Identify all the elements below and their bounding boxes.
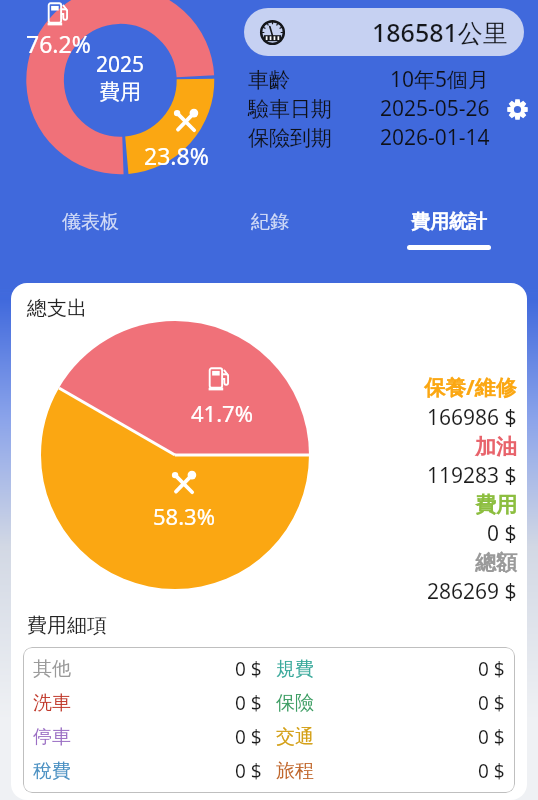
staticText: 2025 [96,50,145,79]
staticText: 保險 [276,691,362,715]
staticText: 0 $ [235,758,262,784]
staticText: 2026-01-14 [380,123,490,152]
staticText: 76.2% [26,28,91,59]
button[interactable]: 紀錄 [180,200,359,258]
staticText: 0 $ [478,724,505,750]
staticText: 總額 [475,550,517,576]
button[interactable]: 稅費 [23,754,515,788]
staticText: 停車 [33,725,119,749]
staticText: 58.3% [153,501,215,531]
button[interactable]: 洗車 [23,686,515,720]
staticText: 紀錄 [251,210,289,234]
staticText: 0 $ [235,690,262,716]
staticText: 儀表板 [62,210,119,234]
button[interactable]: 費用統計 [359,200,538,258]
button[interactable]: Settings [496,88,538,130]
staticText: 保險到期 [248,125,332,151]
staticText: 保養/維修 [424,373,517,402]
staticText: 0 $ [235,656,262,682]
staticText: 23.8% [144,140,209,171]
staticText: 0 $ [478,758,505,784]
button[interactable]: 其他 [23,652,515,686]
button[interactable]: 停車 [23,720,515,754]
staticText: 166986 $ [427,403,517,432]
staticText: 10年5個月 [390,65,490,94]
staticText: 2025-05-26 [380,94,490,123]
staticText: 車齡 [248,67,290,93]
staticText: 旅程 [276,759,362,783]
staticText: 286269 $ [427,577,517,606]
staticText: 交通 [276,725,362,749]
staticText: 0 $ [487,519,517,548]
button[interactable]: 186581公里 [244,8,524,56]
staticText: 費用 [475,492,517,518]
staticText: 0 $ [235,724,262,750]
staticText: 驗車日期 [248,96,332,122]
staticText: 洗車 [33,691,119,715]
staticText: 119283 $ [427,461,517,490]
staticText: 加油 [475,434,517,460]
staticText: 總支出 [27,296,87,321]
staticText: 41.7% [191,398,253,428]
staticText: 稅費 [33,759,119,783]
staticText: 費用細項 [27,613,107,638]
staticText: 其他 [33,657,119,681]
staticText: 費用統計 [411,210,487,234]
staticText: 費用 [99,79,141,105]
staticText: 186581公里 [372,15,508,49]
staticText: 0 $ [478,690,505,716]
button[interactable]: 儀表板 [0,200,180,258]
staticText: 0 $ [478,656,505,682]
staticText: 規費 [276,657,362,681]
